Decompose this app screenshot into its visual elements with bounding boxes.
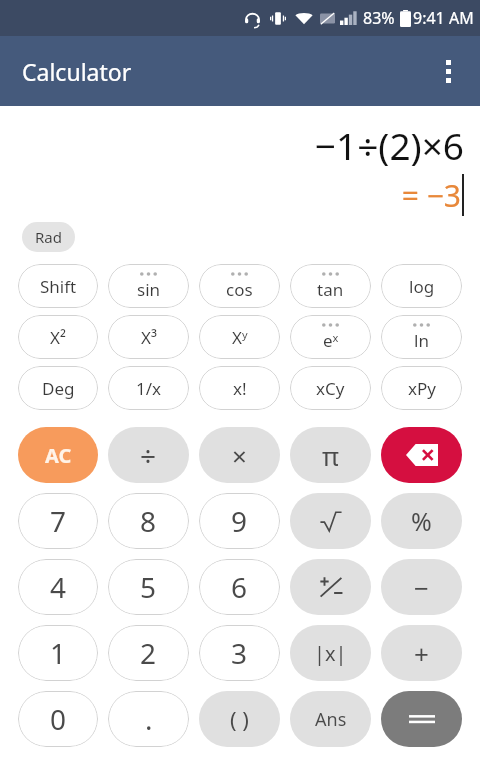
button[interactable]: ×: [199, 427, 280, 483]
button[interactable]: Shift: [18, 264, 98, 308]
button[interactable]: 2: [108, 625, 189, 681]
staticText: 9:41 AM: [413, 7, 474, 29]
staticText: %: [411, 504, 432, 538]
button[interactable]: 1/x: [108, 366, 189, 410]
staticText: 83%: [363, 7, 395, 29]
staticText: X²: [50, 326, 66, 349]
button[interactable]: tan: [290, 264, 371, 308]
staticText: X³: [141, 326, 157, 349]
button[interactable]: 1: [18, 625, 98, 681]
button[interactable]: X²: [18, 315, 98, 359]
button[interactable]: 9: [199, 493, 280, 549]
button[interactable]: AC: [18, 427, 98, 483]
staticText: cos: [226, 278, 253, 301]
button[interactable]: ÷: [108, 427, 189, 483]
staticText: −: [414, 570, 429, 605]
staticText: 0: [50, 700, 67, 738]
button[interactable]: cos: [199, 264, 280, 308]
button[interactable]: Deg: [18, 366, 98, 410]
button[interactable]: xPy: [381, 366, 462, 410]
staticText: ln: [414, 329, 429, 352]
staticText: |x|: [314, 640, 347, 667]
staticText: 1/x: [136, 377, 162, 400]
staticText: 9: [231, 502, 248, 540]
staticText: −1÷(2)×6: [314, 120, 464, 170]
staticText: Calculator: [22, 56, 132, 87]
staticText: 4: [50, 568, 67, 606]
button[interactable]: x!: [199, 366, 280, 410]
button[interactable]: ln: [381, 315, 462, 359]
button[interactable]: −: [381, 559, 462, 615]
button[interactable]: Plus minus: [290, 559, 371, 615]
button[interactable]: 7: [18, 493, 98, 549]
staticText: Deg: [42, 377, 75, 400]
button[interactable]: 8: [108, 493, 189, 549]
button[interactable]: Ans: [290, 691, 371, 747]
button[interactable]: .: [108, 691, 189, 747]
button[interactable]: 5: [108, 559, 189, 615]
staticText: xCy: [316, 377, 345, 400]
staticText: ×: [232, 438, 247, 473]
staticText: ÷: [140, 436, 157, 474]
button[interactable]: Backspace: [381, 427, 462, 483]
staticText: Xʸ: [232, 326, 248, 349]
button[interactable]: xCy: [290, 366, 371, 410]
button[interactable]: X³: [108, 315, 189, 359]
staticText: 5: [140, 568, 157, 606]
staticText: 2: [140, 634, 157, 672]
button[interactable]: Xʸ: [199, 315, 280, 359]
button[interactable]: +: [381, 625, 462, 681]
button[interactable]: π: [290, 427, 371, 483]
staticText: tan: [317, 278, 344, 301]
staticText: 7: [50, 502, 67, 540]
button[interactable]: log: [381, 264, 462, 308]
staticText: 1: [50, 634, 67, 672]
staticText: π: [322, 438, 339, 473]
staticText: .: [145, 700, 153, 738]
staticText: 8: [140, 502, 157, 540]
staticText: 3: [231, 634, 248, 672]
staticText: sin: [137, 278, 161, 301]
button[interactable]: Equals: [381, 691, 462, 747]
staticText: ( ): [230, 704, 249, 734]
staticText: Shift: [40, 275, 77, 298]
button[interactable]: 0: [18, 691, 98, 747]
staticText: Ans: [315, 707, 347, 732]
button[interactable]: eˣ: [290, 315, 371, 359]
button[interactable]: 4: [18, 559, 98, 615]
button[interactable]: |x|: [290, 625, 371, 681]
staticText: x!: [233, 377, 247, 400]
button[interactable]: %: [381, 493, 462, 549]
staticText: 6: [231, 568, 248, 606]
button[interactable]: 6: [199, 559, 280, 615]
staticText: eˣ: [323, 329, 339, 352]
button[interactable]: Rad: [22, 222, 75, 252]
button[interactable]: ( ): [199, 691, 280, 747]
staticText: xPy: [408, 377, 436, 400]
staticText: = −3: [401, 175, 461, 216]
staticText: log: [409, 275, 435, 298]
staticText: Rad: [35, 227, 62, 247]
button[interactable]: sin: [108, 264, 189, 308]
staticText: +: [414, 636, 429, 671]
button[interactable]: Square root: [290, 493, 371, 549]
staticText: AC: [45, 442, 72, 469]
button[interactable]: 3: [199, 625, 280, 681]
button[interactable]: More options: [426, 49, 470, 93]
